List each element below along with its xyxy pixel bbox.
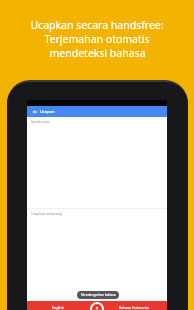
- staticText: Ucapkan secara handsfree:: [30, 18, 164, 32]
- button[interactable]: Ucapkan sekarang: [27, 209, 167, 301]
- staticText: Mendengarkan bahasa: [81, 293, 116, 297]
- staticText: Terjemahan otomatis: [44, 32, 150, 46]
- button[interactable]: Back: [31, 108, 38, 115]
- staticText: English: [52, 305, 65, 310]
- staticText: Ucapkan sekarang: [31, 211, 63, 216]
- staticText: Bahasa Indonesia: [119, 305, 149, 310]
- staticText: mendeteksi bahasa: [49, 46, 146, 60]
- button[interactable]: Microphone: [90, 302, 104, 310]
- button[interactable]: Bahasa Indonesia: [119, 305, 149, 310]
- staticText: Ucapan: [40, 109, 55, 114]
- button[interactable]: English: [52, 305, 65, 310]
- staticText: Speak now: [31, 119, 50, 124]
